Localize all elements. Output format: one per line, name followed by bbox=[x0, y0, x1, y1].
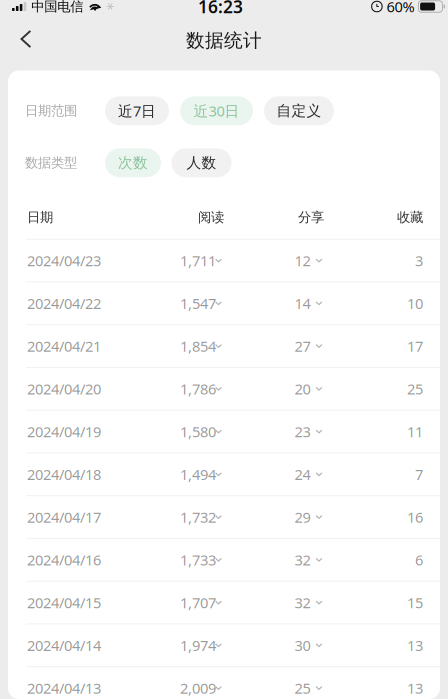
staticText: 16 bbox=[407, 507, 423, 527]
button[interactable]: 2024/04/21 bbox=[8, 325, 440, 367]
staticText: 60% bbox=[386, 0, 414, 16]
staticText: 1,580 bbox=[180, 422, 216, 441]
staticText: 32 bbox=[294, 593, 310, 612]
staticText: 6 bbox=[415, 550, 423, 570]
staticText: 2024/04/17 bbox=[27, 507, 101, 527]
staticText: 数据统计 bbox=[186, 29, 262, 52]
staticText: 日期范围 bbox=[25, 103, 77, 119]
button[interactable]: 2024/04/23 bbox=[8, 240, 440, 281]
staticText: 29 bbox=[294, 507, 310, 527]
staticText: 2024/04/14 bbox=[27, 636, 101, 655]
staticText: 13 bbox=[407, 678, 423, 698]
staticText: 数据类型 bbox=[25, 155, 77, 171]
staticText: 2024/04/23 bbox=[27, 251, 101, 270]
staticText: 分享 bbox=[298, 209, 324, 226]
staticText: 2024/04/21 bbox=[27, 336, 101, 356]
staticText: 中国电信 bbox=[31, 0, 83, 15]
button[interactable]: 2024/04/14 bbox=[8, 624, 440, 666]
staticText: 2024/04/18 bbox=[27, 465, 101, 484]
staticText: 2024/04/13 bbox=[27, 678, 101, 698]
staticText: 20 bbox=[294, 379, 310, 399]
staticText: 24 bbox=[294, 465, 310, 484]
staticText: 10 bbox=[407, 294, 423, 313]
staticText: 日期 bbox=[27, 209, 53, 226]
button[interactable]: 2024/04/13 bbox=[8, 667, 440, 699]
staticText: 25 bbox=[407, 379, 423, 399]
staticText: 16:23 bbox=[198, 0, 243, 18]
staticText: 2,009 bbox=[180, 678, 216, 698]
staticText: 1,732 bbox=[180, 507, 216, 527]
button[interactable]: 2024/04/18 bbox=[8, 453, 440, 495]
button[interactable]: 次数 bbox=[105, 148, 161, 177]
staticText: 2024/04/22 bbox=[27, 294, 101, 313]
button[interactable]: Back bbox=[6, 21, 46, 57]
staticText: 近7日 bbox=[118, 101, 156, 121]
button[interactable]: 人数 bbox=[171, 148, 231, 177]
staticText: 1,786 bbox=[180, 379, 216, 399]
staticText: 1,707 bbox=[180, 593, 216, 612]
button[interactable]: 近30日 bbox=[180, 96, 253, 125]
button[interactable]: 2024/04/15 bbox=[8, 582, 440, 623]
staticText: 2024/04/15 bbox=[27, 593, 101, 612]
staticText: 1,733 bbox=[180, 550, 216, 570]
staticText: 11 bbox=[407, 422, 423, 441]
staticText: 1,547 bbox=[180, 294, 216, 313]
staticText: 15 bbox=[407, 593, 423, 612]
staticText: 13 bbox=[407, 636, 423, 655]
staticText: 自定义 bbox=[276, 102, 321, 120]
staticText: 32 bbox=[294, 550, 310, 570]
staticText: 次数 bbox=[118, 154, 148, 172]
button[interactable]: 2024/04/17 bbox=[8, 496, 440, 538]
button[interactable]: 2024/04/22 bbox=[8, 282, 440, 324]
staticText: 30 bbox=[294, 636, 310, 655]
button[interactable]: 近7日 bbox=[105, 96, 169, 125]
staticText: 1,974 bbox=[180, 636, 216, 655]
button[interactable]: 2024/04/20 bbox=[8, 368, 440, 410]
button[interactable]: 2024/04/19 bbox=[8, 411, 440, 452]
staticText: 27 bbox=[294, 336, 310, 356]
staticText: 23 bbox=[294, 422, 310, 441]
staticText: 7 bbox=[415, 465, 423, 484]
staticText: 2024/04/19 bbox=[27, 422, 101, 441]
staticText: 3 bbox=[415, 251, 423, 270]
staticText: 12 bbox=[294, 251, 310, 270]
staticText: 1,494 bbox=[180, 465, 216, 484]
staticText: 收藏 bbox=[397, 209, 423, 226]
staticText: 近30日 bbox=[193, 101, 239, 121]
staticText: 1,854 bbox=[180, 336, 216, 356]
staticText: 25 bbox=[294, 678, 310, 698]
staticText: 17 bbox=[407, 336, 423, 356]
staticText: 2024/04/16 bbox=[27, 550, 101, 570]
staticText: 2024/04/20 bbox=[27, 379, 101, 399]
staticText: 人数 bbox=[186, 154, 216, 172]
staticText: 阅读 bbox=[198, 209, 224, 226]
button[interactable]: 2024/04/16 bbox=[8, 539, 440, 581]
staticText: 14 bbox=[294, 294, 310, 313]
button[interactable]: 自定义 bbox=[264, 96, 334, 125]
staticText: 1,711 bbox=[180, 251, 216, 270]
